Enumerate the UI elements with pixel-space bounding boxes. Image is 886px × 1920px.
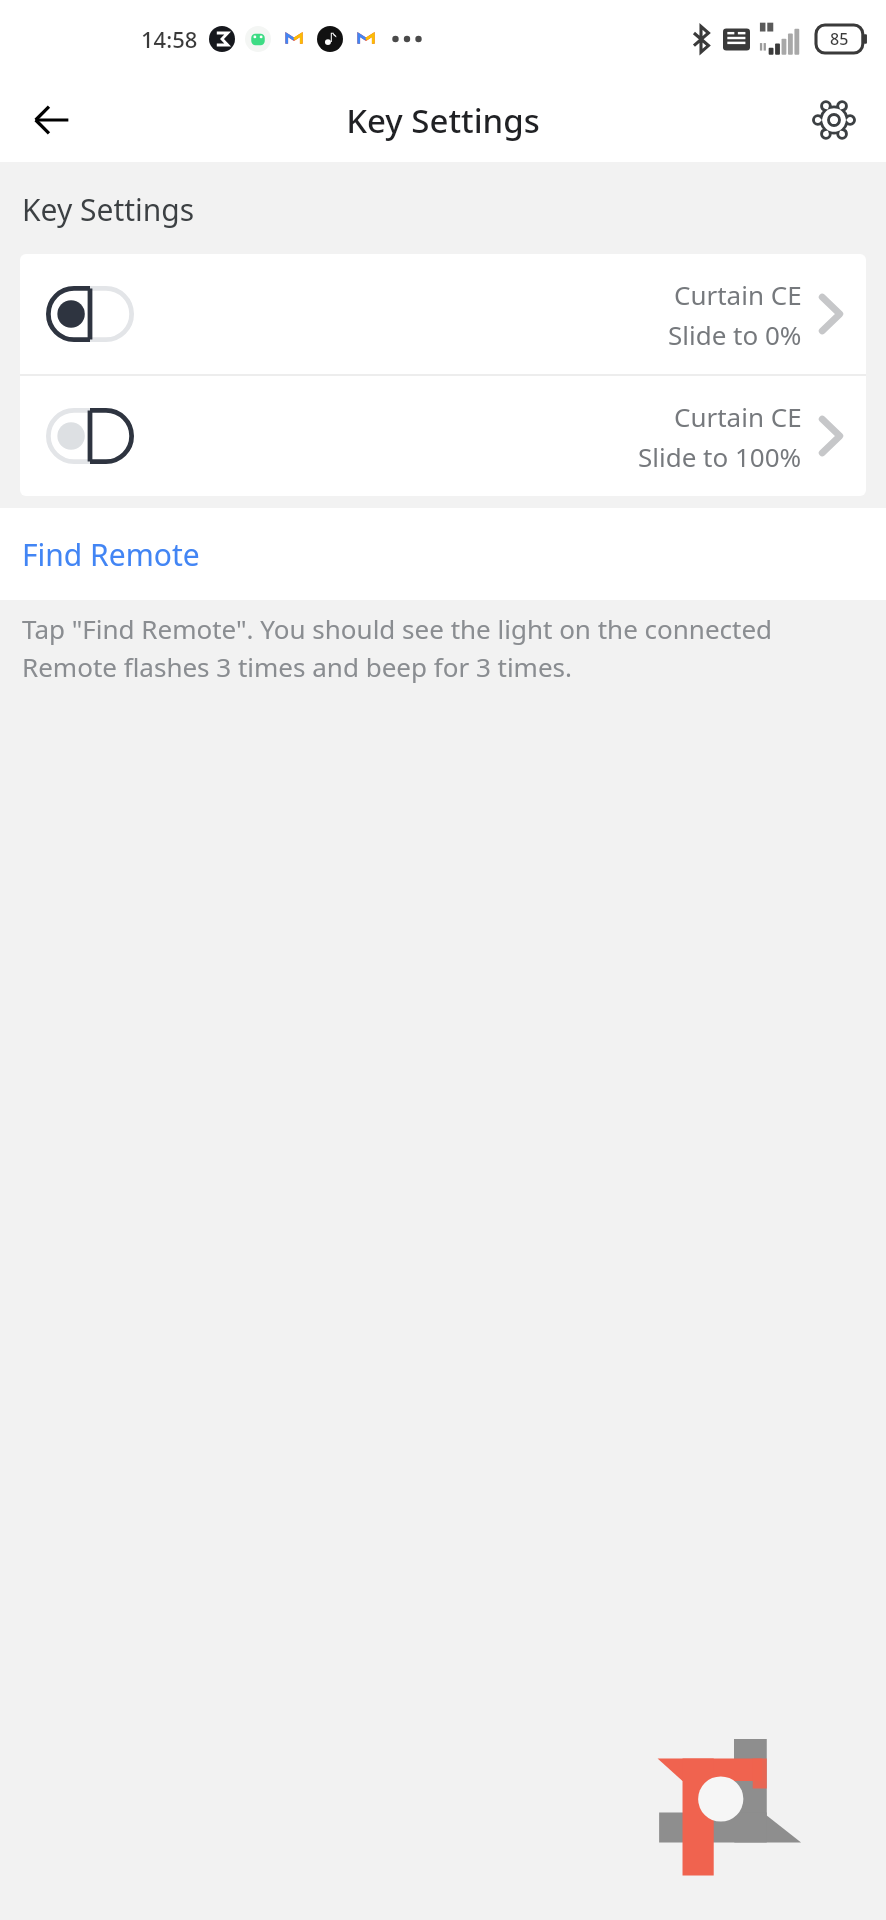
staticText: Slide to 100% <box>638 439 802 474</box>
button[interactable]: Curtain CE <box>20 376 866 496</box>
staticText: Curtain CE <box>674 277 802 312</box>
button[interactable]: Find Remote <box>0 508 886 600</box>
staticText: Find Remote <box>22 534 200 575</box>
staticText: 85 <box>830 28 849 50</box>
button[interactable]: Back <box>18 86 86 154</box>
staticText: Key Settings <box>22 189 195 230</box>
staticText: Tap "Find Remote". You should see the li… <box>22 611 862 684</box>
button[interactable]: Settings <box>802 88 866 152</box>
staticText: Curtain CE <box>674 399 802 434</box>
staticText: 14:58 <box>141 24 198 54</box>
staticText: Slide to 0% <box>668 317 802 352</box>
staticText: Key Settings <box>346 98 540 143</box>
button[interactable]: Curtain CE <box>20 254 866 374</box>
